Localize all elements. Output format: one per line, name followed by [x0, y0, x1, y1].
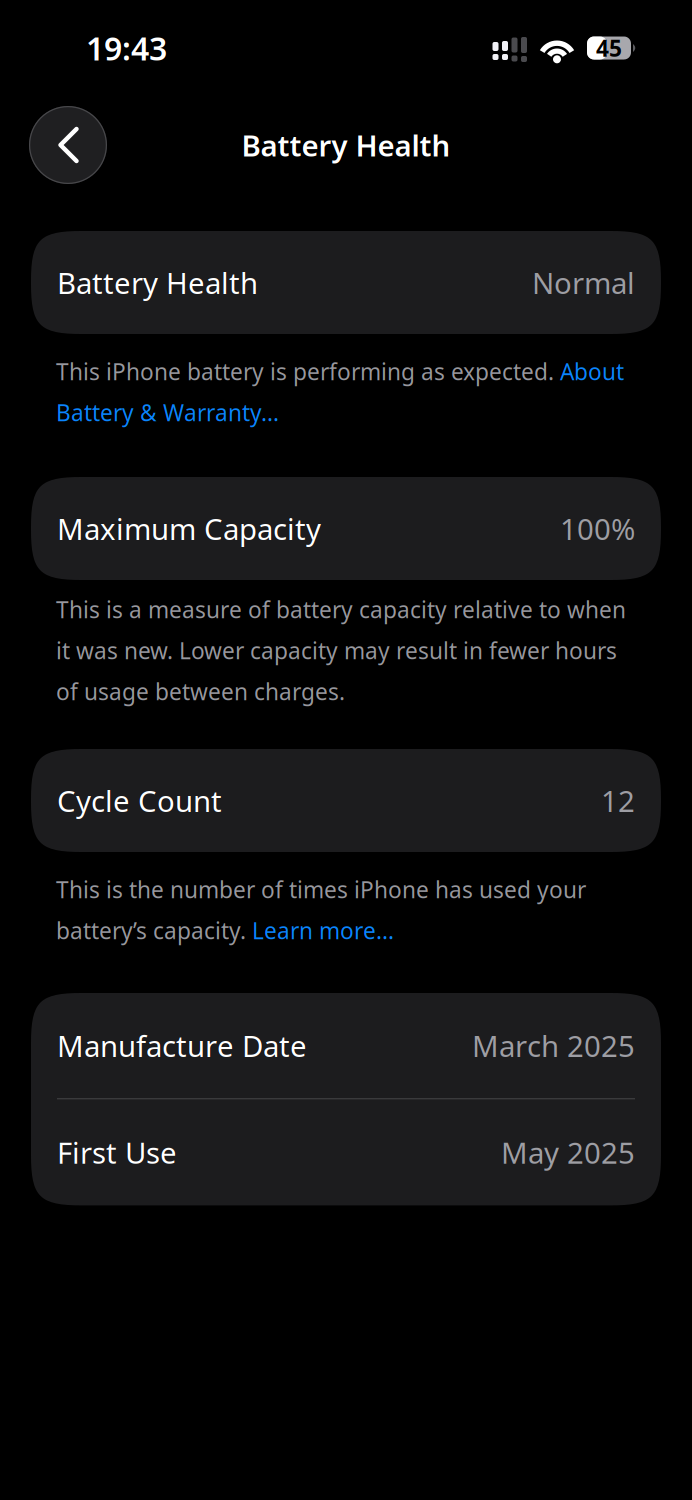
- staticText: May 2025: [501, 1133, 635, 1172]
- staticText: Normal: [532, 263, 635, 302]
- staticText: of usage between charges.: [56, 676, 345, 706]
- staticText: March 2025: [472, 1026, 635, 1065]
- staticText: This is the number of times iPhone has u…: [56, 874, 586, 904]
- staticText: Battery & Warranty...: [56, 397, 279, 427]
- button[interactable]: Battery Health: [31, 231, 661, 334]
- staticText: Battery Health: [57, 263, 258, 302]
- staticText: First Use: [57, 1133, 177, 1172]
- staticText: 12: [601, 781, 635, 820]
- staticText: Cycle Count: [57, 781, 222, 820]
- staticText: 100%: [560, 509, 635, 548]
- staticText: 45: [596, 33, 622, 63]
- button[interactable]: Maximum Capacity: [31, 477, 661, 580]
- button[interactable]: First Use: [31, 1099, 661, 1205]
- staticText: battery’s capacity.: [56, 915, 252, 945]
- staticText: Manufacture Date: [57, 1026, 307, 1065]
- staticText: 19:43: [86, 27, 167, 69]
- staticText: it was new. Lower capacity may result in…: [56, 635, 617, 665]
- staticText: Battery Health: [241, 125, 450, 164]
- staticText: About: [560, 356, 624, 386]
- staticText: This iPhone battery is performing as exp…: [56, 356, 560, 386]
- button[interactable]: Cycle Count: [31, 749, 661, 852]
- staticText: This is a measure of battery capacity re…: [56, 594, 626, 624]
- button[interactable]: Back: [27, 104, 109, 186]
- button[interactable]: Manufacture Date: [31, 993, 661, 1098]
- staticText: Maximum Capacity: [57, 509, 321, 548]
- staticText: Learn more...: [252, 915, 394, 945]
